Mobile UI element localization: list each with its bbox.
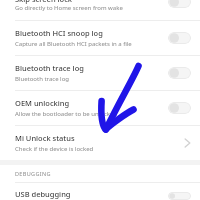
staticText: Check if the device is locked bbox=[15, 145, 94, 153]
button[interactable]: USB debugging bbox=[0, 183, 200, 200]
staticText: Skip screen lock bbox=[15, 0, 73, 4]
staticText: Capture all Bluetooth HCI packets in a f… bbox=[15, 40, 132, 48]
button[interactable]: Skip screen lock bbox=[0, 0, 200, 12]
staticText: Bluetooth trace log bbox=[15, 63, 84, 73]
staticText: Bluetooth HCI snoop log bbox=[15, 28, 103, 38]
staticText: Mi Unlock status bbox=[15, 133, 75, 143]
button[interactable]: Toggle switch bbox=[168, 67, 191, 79]
button[interactable]: Toggle switch bbox=[168, 192, 191, 200]
button[interactable]: Open Mi Unlock status bbox=[175, 135, 191, 151]
button[interactable]: Toggle switch bbox=[168, 0, 191, 8]
staticText: DEBUGGING bbox=[15, 170, 51, 177]
button[interactable]: Toggle switch bbox=[168, 32, 191, 44]
staticText: Go directly to Home screen from wake bbox=[15, 4, 123, 12]
staticText: Allow the bootloader to be unlocked bbox=[15, 110, 118, 118]
button[interactable]: Bluetooth trace log bbox=[0, 56, 200, 90]
button[interactable]: Mi Unlock status bbox=[0, 126, 200, 160]
button[interactable]: Bluetooth HCI snoop log bbox=[0, 21, 200, 55]
staticText: OEM unlocking bbox=[15, 98, 70, 108]
button[interactable]: Toggle switch bbox=[168, 102, 191, 114]
button[interactable]: OEM unlocking bbox=[0, 91, 200, 125]
staticText: USB debugging bbox=[15, 189, 71, 199]
staticText: Bluetooth trace log bbox=[15, 75, 69, 83]
